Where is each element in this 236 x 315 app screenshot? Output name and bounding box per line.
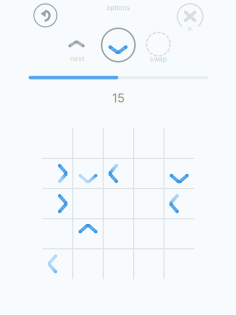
button[interactable]: swap [0, 0, 236, 315]
staticText: 15 [112, 91, 124, 105]
button[interactable]: Close [0, 0, 236, 315]
button[interactable]: Current piece [0, 0, 236, 315]
staticText: next [70, 55, 84, 63]
button[interactable]: next [0, 0, 236, 315]
button[interactable]: Undo [0, 0, 236, 315]
staticText: swap [150, 55, 167, 63]
staticText: options [107, 4, 131, 12]
